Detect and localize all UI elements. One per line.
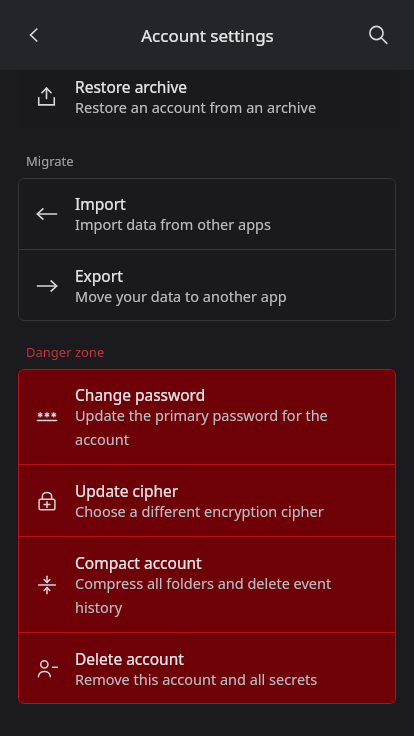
staticText: Danger zone (26, 343, 105, 361)
staticText: Move your data to another app (75, 286, 287, 306)
button[interactable]: Search (354, 11, 402, 59)
staticText: Migrate (26, 152, 74, 170)
staticText: Remove this account and all secrets (75, 669, 318, 689)
button[interactable]: Back (10, 11, 58, 59)
button[interactable]: Update cipher (18, 465, 396, 536)
button[interactable]: Restore archive (18, 70, 396, 128)
button[interactable]: Change password (18, 369, 396, 464)
staticText: Account settings (141, 24, 274, 47)
staticText: Compress all folders and delete event hi… (75, 573, 332, 617)
staticText: Update cipher (75, 480, 179, 501)
staticText: Delete account (75, 648, 184, 669)
staticText: Update the primary password for the acco… (75, 405, 328, 449)
staticText: Restore archive (75, 76, 188, 97)
staticText: Change password (75, 384, 206, 405)
staticText: Import (75, 193, 126, 214)
staticText: Export (75, 265, 123, 286)
button[interactable]: Compact account (18, 537, 396, 632)
staticText: Choose a different encryption cipher (75, 501, 324, 521)
button[interactable]: Delete account (18, 633, 396, 704)
staticText: Restore an account from an archive (75, 97, 317, 117)
staticText: Import data from other apps (75, 214, 271, 234)
staticText: Compact account (75, 552, 202, 573)
button[interactable]: Export (18, 250, 396, 321)
button[interactable]: Import (18, 178, 396, 249)
